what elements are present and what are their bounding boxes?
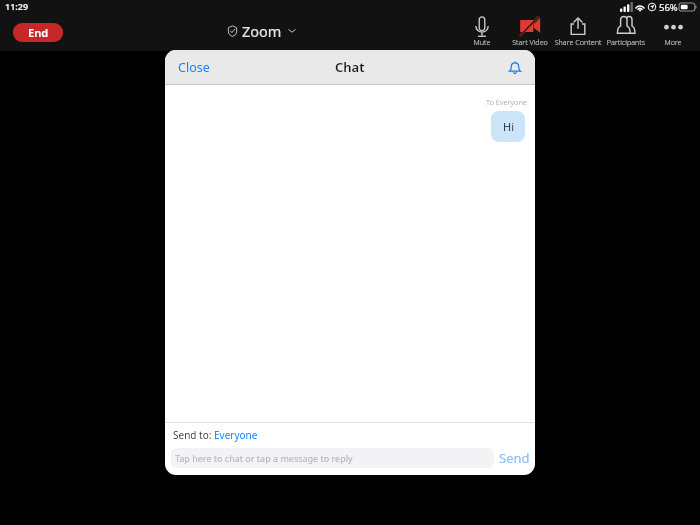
button[interactable]: Tap here to chat or tap a message to rep… xyxy=(171,448,494,468)
staticText: Close xyxy=(178,59,210,76)
staticText: Zoom xyxy=(242,21,282,41)
staticText: Chat xyxy=(335,58,365,76)
button[interactable]: Close xyxy=(178,59,210,76)
button[interactable]: Send xyxy=(499,449,530,467)
staticText: 11:29 xyxy=(5,0,29,12)
staticText: Hi xyxy=(503,119,514,134)
staticText: Participants xyxy=(595,37,657,47)
staticText: Send xyxy=(499,449,530,467)
staticText: Share Content xyxy=(547,37,609,47)
staticText: Send to: xyxy=(173,428,214,442)
button[interactable]: Share Content xyxy=(547,14,609,48)
staticText: Start Video xyxy=(499,37,561,47)
staticText: Mute xyxy=(451,37,513,47)
button[interactable]: Chat notifications xyxy=(505,57,525,77)
button[interactable]: Everyone xyxy=(214,428,258,442)
button[interactable]: Participants xyxy=(595,14,657,48)
button[interactable]: Mute xyxy=(451,14,513,48)
button[interactable]: Hi xyxy=(491,111,525,142)
staticText: To Everyone xyxy=(486,97,528,107)
button[interactable]: More xyxy=(642,14,700,48)
button[interactable]: Start Video xyxy=(499,14,561,48)
button[interactable]: End xyxy=(13,23,63,42)
staticText: 56% xyxy=(659,1,678,14)
staticText: Tap here to chat or tap a message to rep… xyxy=(175,452,353,464)
staticText: End xyxy=(28,25,49,40)
staticText: Everyone xyxy=(214,428,258,442)
staticText: More xyxy=(642,37,700,47)
button[interactable]: Zoom xyxy=(227,21,296,41)
